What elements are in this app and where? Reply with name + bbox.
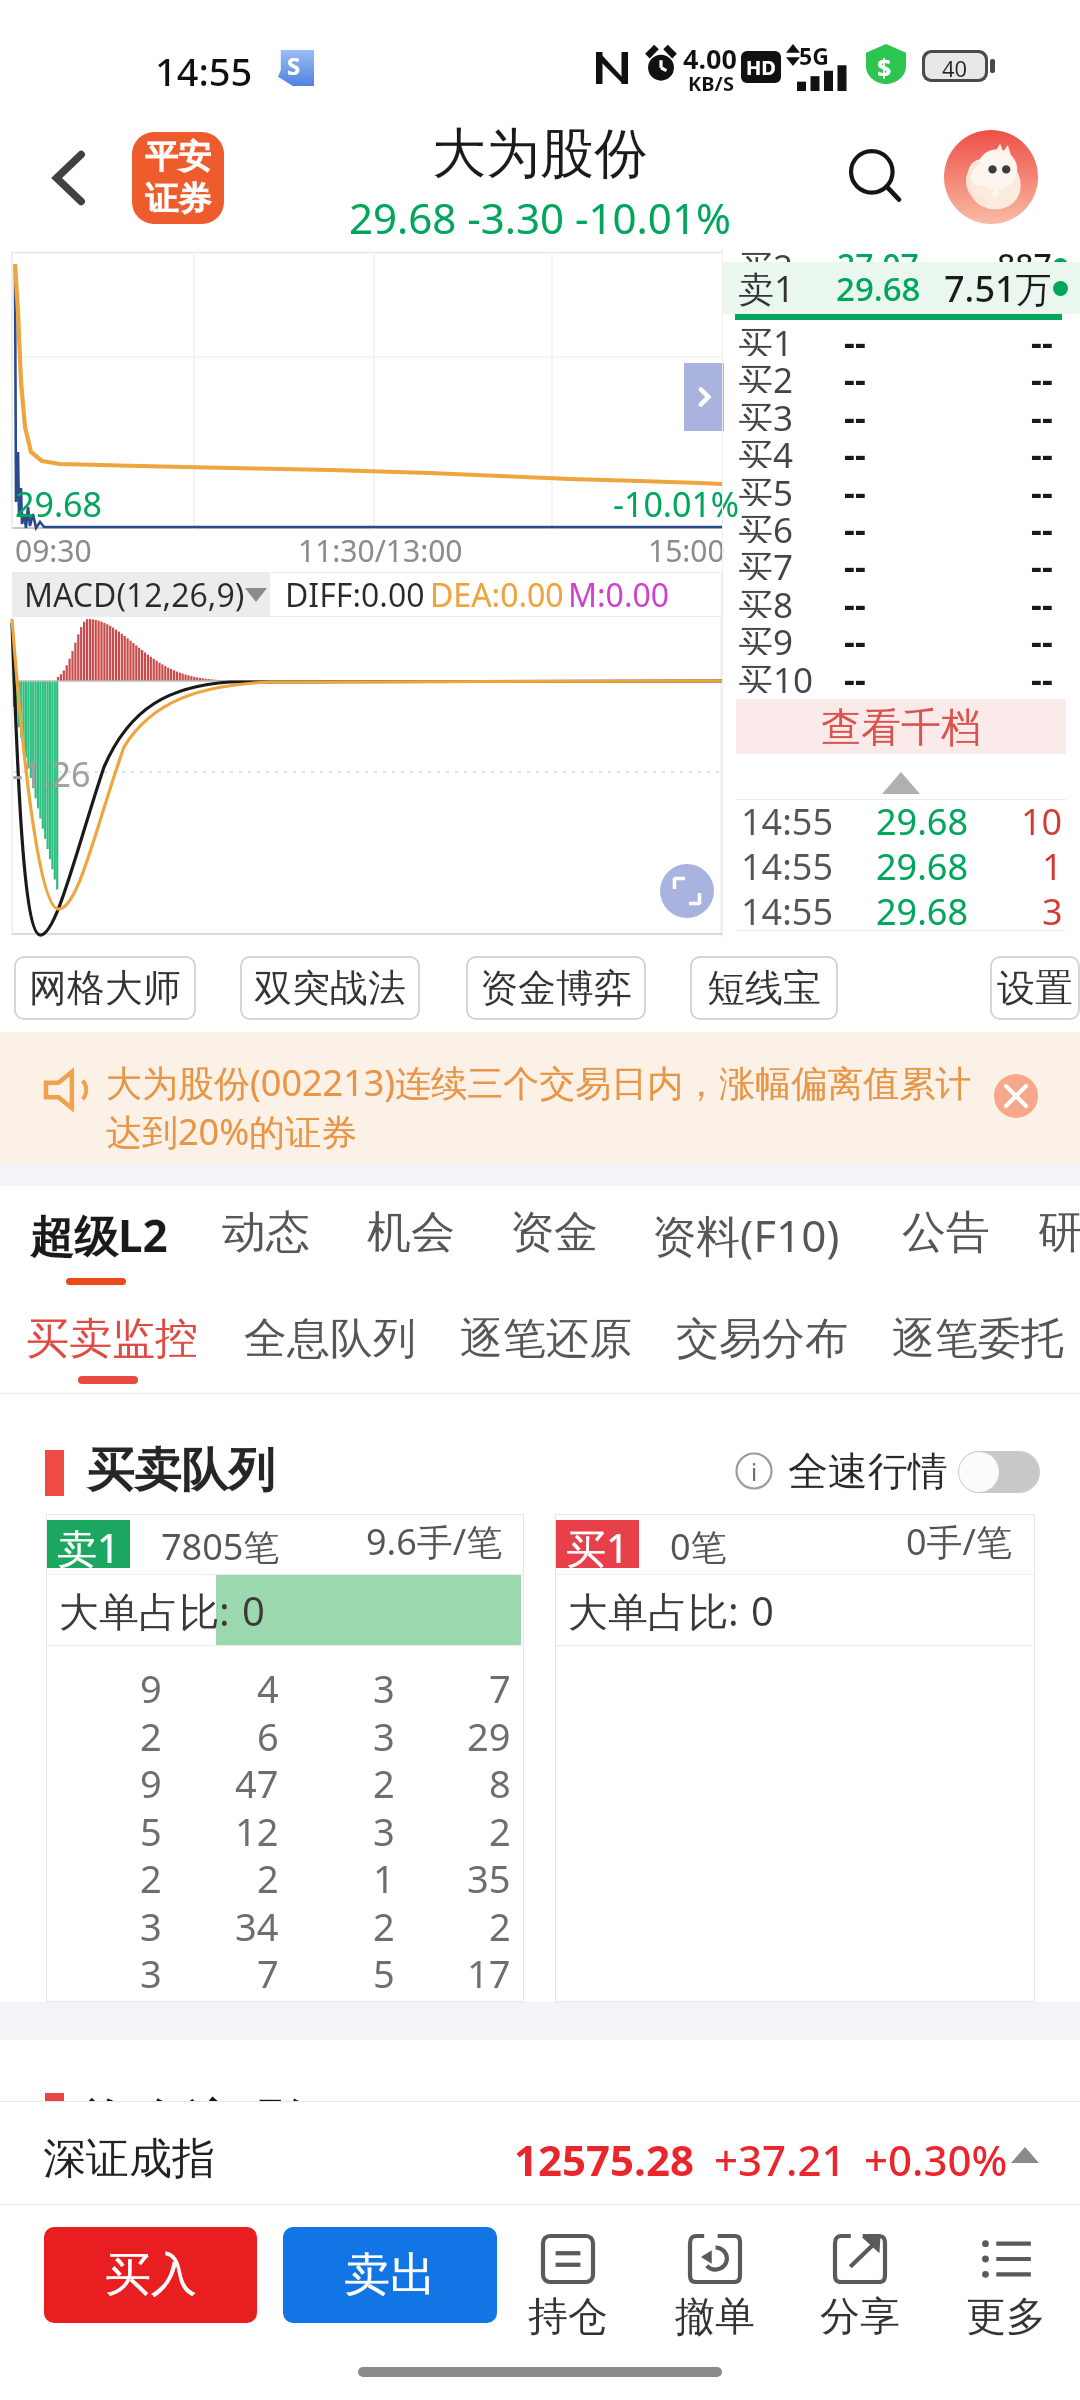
button[interactable]: 逐笔还原 [460, 1300, 632, 1376]
button[interactable]: 买8 [722, 581, 1080, 618]
staticText: 资金流明细 [84, 2093, 334, 2156]
button[interactable]: 资金博弈 [466, 956, 646, 1020]
staticText: 大为股份(002213)连续三个交易日内，涨幅偏离值累计 [106, 1058, 972, 1107]
staticText: -- [1031, 543, 1053, 580]
staticText: 29.68 [876, 797, 969, 842]
button[interactable]: 深证成指 [0, 2101, 1080, 2205]
button[interactable]: 买7 [722, 543, 1080, 580]
staticText: 0 [242, 1583, 265, 1637]
staticText: 14:55 [741, 842, 834, 887]
staticText: 29 [467, 1710, 511, 1757]
button[interactable]: Back [20, 128, 120, 228]
staticText: 29.68 [876, 842, 969, 887]
button[interactable]: 分享 [812, 2235, 908, 2341]
button[interactable]: 大为股份(002213)连续三个交易日内，涨幅偏离值累计 [0, 1032, 1080, 1164]
button[interactable]: 双突战法 [240, 956, 420, 1020]
button[interactable]: Customer service [944, 130, 1038, 224]
staticText: 5 [373, 1947, 395, 1994]
staticText: -- [844, 618, 866, 655]
button[interactable]: 买4 [722, 431, 1080, 468]
staticText: 撤单 [675, 2291, 755, 2341]
staticText: 29.68 [876, 887, 969, 932]
button[interactable]: 公告 [902, 1190, 990, 1276]
staticText: -1.26 [12, 751, 91, 797]
staticText: 机会 [367, 1205, 455, 1260]
staticText: 3 [373, 1662, 395, 1709]
button[interactable]: Close notice [994, 1074, 1038, 1118]
button[interactable]: 买入 [44, 2227, 257, 2323]
staticText: 买1 [566, 1520, 629, 1568]
button[interactable]: 撤单 [667, 2235, 763, 2341]
staticText: 8 [489, 1757, 511, 1804]
button[interactable]: Next chart [684, 363, 724, 431]
staticText: -- [1031, 581, 1053, 618]
staticText: 9.6手/笔 [366, 1517, 503, 1566]
staticText: -- [1031, 394, 1053, 431]
button[interactable]: 买1 [722, 319, 1080, 356]
staticText: -- [844, 319, 866, 356]
staticText: 2 [140, 1852, 162, 1899]
staticText: 买9 [738, 618, 794, 655]
staticText: 3 [1042, 887, 1063, 932]
button[interactable]: 买3 [722, 394, 1080, 431]
button[interactable]: 交易分布 [676, 1300, 848, 1376]
button[interactable]: Search [830, 130, 926, 226]
button[interactable]: 机会 [367, 1190, 455, 1276]
staticText: 查看千档 [821, 702, 981, 752]
staticText: 2 [257, 1852, 279, 1899]
staticText: 买1 [738, 319, 794, 356]
staticText: 35 [467, 1852, 511, 1899]
staticText: 5G [799, 40, 829, 71]
button[interactable]: 买卖监控 [26, 1300, 198, 1376]
staticText: 0笔 [670, 1522, 727, 1571]
button[interactable]: 查看千档 [736, 699, 1066, 754]
button[interactable]: 逐笔委托 [892, 1300, 1064, 1376]
button[interactable]: 更多 [958, 2235, 1054, 2341]
button[interactable]: 买10 [722, 656, 1080, 693]
button[interactable]: MACD(12,26,9) [13, 572, 270, 617]
button[interactable]: 研 [1038, 1190, 1080, 1276]
button[interactable]: 买6 [722, 506, 1080, 543]
staticText: 超级L2 [30, 1205, 168, 1265]
staticText: M:0.00 [568, 573, 670, 617]
staticText: 卖1 [57, 1520, 120, 1568]
button[interactable]: 卖出 [283, 2227, 497, 2323]
staticText: DEA:0.00 [430, 573, 564, 617]
button[interactable]: 资料(F10) [652, 1190, 840, 1276]
button[interactable]: 超级L2 [30, 1190, 168, 1276]
staticText: 29.68 -3.30 -10.01% [349, 189, 731, 246]
staticText: 分享 [820, 2291, 900, 2341]
staticText: 买3 [738, 394, 794, 431]
button[interactable]: 买2 [722, 356, 1080, 393]
button[interactable]: Toggle full-speed quotes [958, 1451, 1040, 1493]
staticText: -- [844, 356, 866, 393]
button[interactable]: 买9 [722, 618, 1080, 655]
staticText: 短线宝 [707, 964, 821, 1012]
button[interactable]: 全息队列 [244, 1300, 416, 1376]
staticText: 10 [1021, 797, 1063, 842]
staticText: 2 [489, 1900, 511, 1947]
button[interactable]: 设置 [990, 956, 1080, 1020]
staticText: 研 [1038, 1205, 1080, 1260]
staticText: 0手/笔 [906, 1517, 1012, 1566]
staticText: 买6 [738, 506, 794, 543]
staticText: 40 [942, 53, 968, 79]
button[interactable]: 持仓 [520, 2235, 616, 2341]
staticText: 设置 [997, 964, 1073, 1012]
button[interactable]: 网格大师 [14, 956, 196, 1020]
staticText: 公告 [902, 1205, 990, 1260]
staticText: -10.01% [613, 481, 740, 527]
button[interactable]: 短线宝 [690, 956, 838, 1020]
staticText: 4.00 [683, 40, 737, 77]
button[interactable]: Fullscreen chart [660, 864, 714, 918]
staticText: 15:00 [648, 530, 725, 571]
button[interactable]: 资金 [510, 1190, 598, 1276]
staticText: 29.68 [15, 481, 102, 527]
button[interactable]: 动态 [222, 1190, 310, 1276]
button[interactable]: 买5 [722, 469, 1080, 506]
staticText: 2 [373, 1757, 395, 1804]
staticText: 买10 [738, 656, 814, 693]
staticText: +0.30% [864, 2131, 1008, 2188]
staticText: 资金 [510, 1205, 598, 1260]
button[interactable]: Ping An Securities [132, 132, 224, 224]
